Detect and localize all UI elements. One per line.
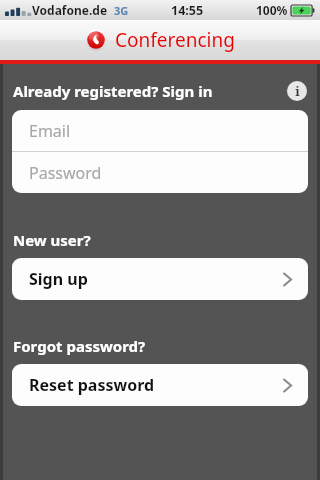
staticText: Email <box>29 120 71 142</box>
staticText: Password <box>29 162 102 184</box>
button[interactable]: Reset password <box>12 364 308 406</box>
staticText: i <box>295 82 300 100</box>
button[interactable]: Information <box>287 81 307 101</box>
staticText: Already registered? Sign in <box>13 81 213 101</box>
staticText: Reset password <box>29 374 155 396</box>
staticText: Conferencing <box>115 27 235 53</box>
staticText: Forgot password? <box>13 336 146 356</box>
staticText: Sign up <box>29 268 88 290</box>
staticText: 14:55 <box>171 2 204 19</box>
staticText: 100% <box>256 2 288 18</box>
button[interactable]: Email <box>12 110 308 151</box>
staticText: New user? <box>13 230 91 250</box>
staticText: 3G <box>114 3 129 18</box>
button[interactable]: Sign up <box>12 258 308 300</box>
button[interactable]: Password <box>12 152 308 193</box>
staticText: Vodafone.de <box>32 2 108 18</box>
